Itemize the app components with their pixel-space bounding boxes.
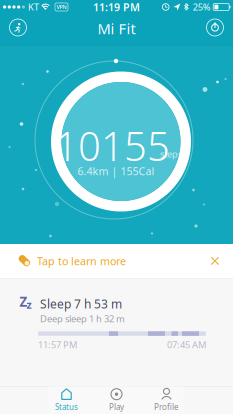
staticText: 07:45 AM — [167, 338, 206, 351]
staticText: 6.4km | 155Cal — [77, 164, 154, 178]
staticText: VPN — [56, 3, 66, 11]
button[interactable]: Status — [48, 388, 84, 412]
button[interactable]: Dismiss — [203, 249, 233, 273]
staticText: Profile — [154, 402, 179, 412]
staticText: Status — [55, 402, 78, 412]
button[interactable]: Z — [0, 278, 233, 386]
staticText: KT — [28, 1, 39, 13]
button[interactable]: Tap to learn more — [0, 244, 233, 278]
staticText: 11:57 PM — [38, 338, 77, 351]
staticText: Deep sleep 1 h 32 m — [40, 312, 125, 325]
staticText: Play — [109, 402, 124, 412]
staticText: Sleep 7 h 53 m — [40, 296, 122, 312]
button[interactable]: Play — [98, 388, 134, 412]
staticText: 11:19 PM — [93, 0, 140, 14]
staticText: Mi Fit — [97, 19, 135, 38]
staticText: Tap to learn more — [37, 254, 126, 268]
staticText: Z — [19, 293, 27, 310]
staticText: 10155 — [55, 119, 170, 172]
staticText: 25% — [193, 1, 211, 13]
button[interactable]: Profile — [148, 388, 184, 412]
staticText: steps — [160, 148, 182, 160]
button[interactable]: Activity — [6, 15, 30, 39]
button[interactable]: Sync — [203, 15, 227, 39]
staticText: z — [26, 297, 31, 312]
